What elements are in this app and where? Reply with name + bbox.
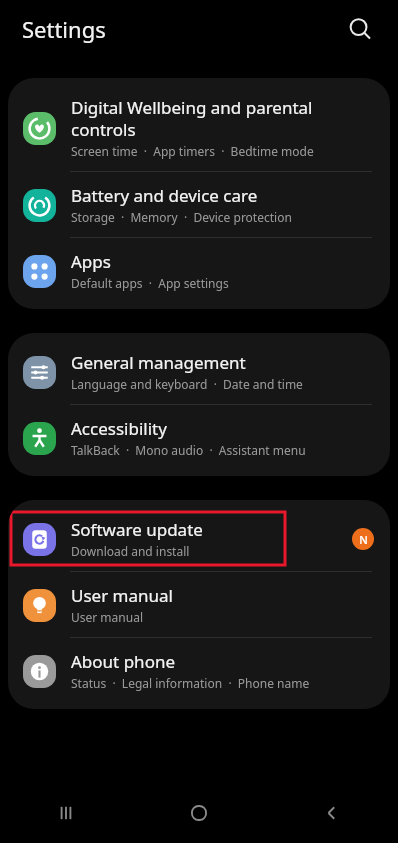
button[interactable]: Software update (8, 506, 390, 571)
button[interactable]: User manual (8, 572, 390, 637)
staticText: Settings (22, 14, 106, 44)
button[interactable]: Battery and device care (8, 172, 390, 237)
staticText: Accessibility (71, 417, 167, 440)
staticText: Default apps · App settings (71, 275, 229, 291)
button[interactable]: Accessibility (8, 405, 390, 470)
staticText: User manual (71, 584, 173, 607)
button[interactable]: Search (340, 9, 380, 49)
staticText: Apps (71, 250, 111, 273)
staticText: User manual (71, 609, 143, 625)
staticText: Download and install (71, 543, 190, 559)
staticText: Storage · Memory · Device protection (71, 209, 292, 225)
button[interactable]: Apps (8, 238, 390, 303)
button[interactable]: General management (8, 339, 390, 404)
button[interactable]: About phone (8, 638, 390, 703)
staticText: TalkBack · Mono audio · Assistant menu (71, 442, 306, 458)
staticText: Digital Wellbeing and parental controls (71, 96, 374, 141)
staticText: Battery and device care (71, 184, 258, 207)
staticText: About phone (71, 650, 176, 673)
button[interactable]: Home (132, 783, 265, 843)
button[interactable]: Digital Wellbeing and parental controls (8, 84, 390, 171)
staticText: Software update (71, 518, 203, 541)
staticText: General management (71, 351, 246, 374)
button[interactable]: Recent apps (0, 783, 132, 843)
staticText: Status · Legal information · Phone name (71, 675, 310, 691)
button[interactable]: Back (265, 783, 398, 843)
staticText: N (359, 532, 368, 547)
staticText: Screen time · App timers · Bedtime mode (71, 143, 314, 159)
staticText: Language and keyboard · Date and time (71, 376, 303, 392)
